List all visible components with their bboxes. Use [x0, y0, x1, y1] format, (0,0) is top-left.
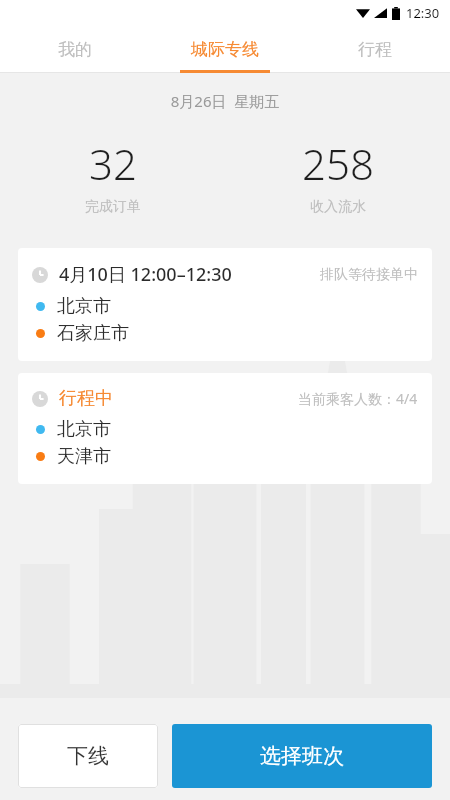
staticText: 下线	[67, 743, 109, 769]
staticText: 收入流水	[310, 198, 366, 216]
staticText: 32	[89, 135, 137, 192]
button[interactable]: 我的	[0, 26, 150, 73]
button[interactable]: 行程	[300, 26, 450, 73]
staticText: 排队等待接单中	[320, 266, 418, 284]
button[interactable]: 行程中	[18, 373, 432, 484]
staticText: 城际专线	[191, 39, 259, 60]
staticText: 4月10日 12:00–12:30	[59, 262, 232, 287]
staticText: 258	[302, 135, 374, 192]
button[interactable]: 城际专线	[150, 26, 300, 73]
staticText: 北京市	[57, 295, 111, 318]
staticText: 当前乘客人数：4/4	[298, 389, 418, 408]
staticText: 12:30	[406, 4, 440, 22]
staticText: 我的	[58, 39, 92, 60]
staticText: 行程	[358, 39, 392, 60]
staticText: 完成订单	[85, 198, 141, 216]
staticText: 选择班次	[260, 743, 344, 769]
staticText: 行程中	[59, 387, 113, 410]
staticText: 石家庄市	[57, 322, 129, 345]
staticText: 北京市	[57, 418, 111, 441]
staticText: 8月26日 星期五	[0, 91, 450, 111]
button[interactable]: 下线	[18, 724, 158, 788]
button[interactable]: 选择班次	[172, 724, 432, 788]
button[interactable]: 4月10日 12:00–12:30	[18, 248, 432, 361]
staticText: 天津市	[57, 445, 111, 468]
